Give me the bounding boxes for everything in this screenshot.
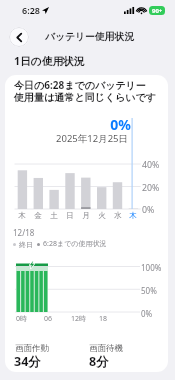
staticText: バッテリー使用状況 bbox=[45, 31, 135, 43]
staticText: 06 bbox=[44, 314, 53, 324]
staticText: 終日 bbox=[19, 240, 33, 249]
staticText: 今日の6:28までのバッテリー 使用量は通常と同じくらいです bbox=[14, 78, 156, 104]
staticText: 34分 bbox=[14, 353, 41, 370]
staticText: 0時 bbox=[16, 314, 28, 324]
button[interactable]: 戻る bbox=[9, 27, 29, 47]
staticText: 0% bbox=[141, 308, 153, 319]
staticText: 6:28までの使用状況 bbox=[43, 239, 107, 249]
staticText: 8分 bbox=[89, 353, 109, 370]
staticText: 0% bbox=[142, 204, 155, 216]
staticText: 50% bbox=[141, 285, 157, 296]
staticText: 木 bbox=[125, 211, 141, 221]
staticText: 12時 bbox=[71, 314, 87, 324]
staticText: 土 bbox=[46, 211, 62, 221]
staticText: 90+ bbox=[152, 7, 163, 15]
staticText: 画面待機 bbox=[89, 343, 123, 354]
staticText: 日 bbox=[62, 211, 78, 221]
staticText: 月 bbox=[78, 211, 94, 221]
staticText: 20% bbox=[142, 182, 160, 194]
staticText: 0% bbox=[61, 115, 131, 134]
staticText: 金 bbox=[30, 211, 46, 221]
staticText: 100% bbox=[141, 262, 162, 273]
staticText: 1日の使用状況 bbox=[14, 54, 85, 69]
staticText: 12/18 bbox=[13, 227, 35, 238]
staticText: 画面作動 bbox=[15, 343, 49, 354]
staticText: 木 bbox=[14, 211, 30, 221]
staticText: 2025年12月25日 bbox=[32, 132, 128, 145]
staticText: 火 bbox=[94, 211, 110, 221]
staticText: 水 bbox=[110, 211, 126, 221]
staticText: 40% bbox=[142, 159, 160, 171]
staticText: 6:28 bbox=[22, 4, 40, 16]
staticText: 18 bbox=[99, 314, 108, 324]
